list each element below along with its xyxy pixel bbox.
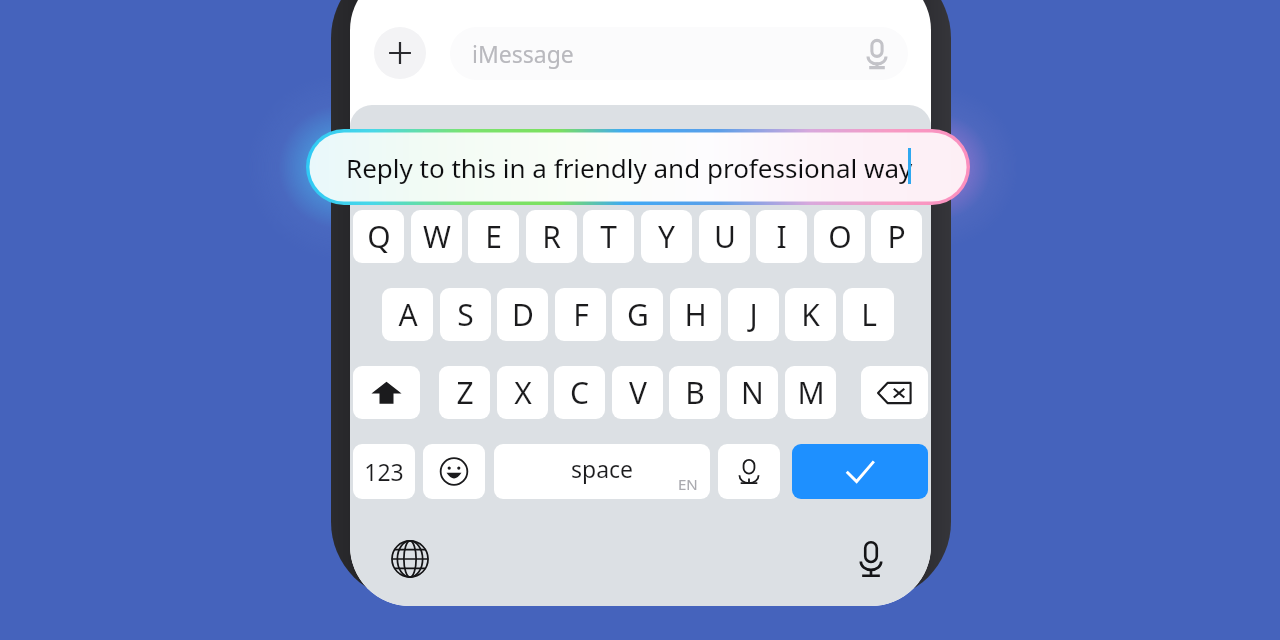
- button[interactable]: Dictate: [862, 37, 892, 71]
- button[interactable]: Z: [439, 366, 490, 419]
- staticText: A: [398, 294, 418, 335]
- staticText: O: [828, 216, 852, 257]
- staticText: E: [485, 216, 502, 257]
- staticText: J: [749, 294, 758, 335]
- button[interactable]: iMessage: [450, 27, 908, 80]
- staticText: Y: [658, 216, 675, 257]
- button[interactable]: Reply to this in a friendly and professi…: [306, 129, 970, 205]
- staticText: I: [776, 216, 787, 257]
- staticText: W: [423, 216, 451, 257]
- staticText: Reply to this in a friendly and professi…: [346, 150, 913, 185]
- staticText: P: [887, 216, 906, 257]
- button[interactable]: V: [612, 366, 663, 419]
- button[interactable]: Dictation: [848, 534, 894, 584]
- button[interactable]: Shift: [353, 366, 420, 419]
- button[interactable]: H: [670, 288, 721, 341]
- staticText: EN: [678, 474, 698, 494]
- button[interactable]: Voice input: [718, 444, 780, 499]
- button[interactable]: K: [785, 288, 836, 341]
- staticText: M: [797, 372, 825, 413]
- button[interactable]: Y: [641, 210, 692, 263]
- button[interactable]: Change keyboard language: [387, 536, 433, 582]
- staticText: B: [685, 372, 705, 413]
- button[interactable]: A: [382, 288, 433, 341]
- staticText: space: [571, 453, 634, 484]
- staticText: R: [542, 216, 561, 257]
- staticText: G: [627, 294, 649, 335]
- button[interactable]: T: [583, 210, 634, 263]
- button[interactable]: X: [497, 366, 548, 419]
- button[interactable]: R: [526, 210, 577, 263]
- button[interactable]: Q: [353, 210, 404, 263]
- button[interactable]: L: [843, 288, 894, 341]
- button[interactable]: B: [669, 366, 720, 419]
- button[interactable]: U: [699, 210, 750, 263]
- button[interactable]: F: [555, 288, 606, 341]
- staticText: Q: [367, 216, 391, 257]
- staticText: Z: [456, 372, 474, 413]
- button[interactable]: Send: [792, 444, 928, 499]
- staticText: X: [514, 372, 532, 413]
- staticText: C: [570, 372, 589, 413]
- staticText: D: [512, 294, 534, 335]
- staticText: iMessage: [472, 38, 574, 69]
- button[interactable]: D: [497, 288, 548, 341]
- button[interactable]: O: [814, 210, 865, 263]
- button[interactable]: M: [785, 366, 836, 419]
- button[interactable]: N: [727, 366, 778, 419]
- staticText: T: [600, 216, 617, 257]
- staticText: V: [629, 372, 647, 413]
- staticText: N: [741, 372, 764, 413]
- button[interactable]: C: [554, 366, 605, 419]
- button[interactable]: Backspace: [861, 366, 928, 419]
- staticText: 123: [364, 456, 404, 487]
- button[interactable]: I: [756, 210, 807, 263]
- staticText: U: [714, 216, 736, 257]
- button[interactable]: E: [468, 210, 519, 263]
- staticText: F: [573, 294, 589, 335]
- button[interactable]: P: [871, 210, 922, 263]
- button[interactable]: Emoji: [423, 444, 485, 499]
- button[interactable]: Add attachment: [374, 27, 426, 79]
- button[interactable]: 123: [353, 444, 415, 499]
- button[interactable]: S: [440, 288, 491, 341]
- button[interactable]: G: [612, 288, 663, 341]
- button[interactable]: J: [728, 288, 779, 341]
- staticText: K: [801, 294, 820, 335]
- staticText: S: [457, 294, 474, 335]
- button[interactable]: space: [494, 444, 710, 499]
- staticText: L: [861, 294, 877, 335]
- staticText: H: [684, 294, 707, 335]
- button[interactable]: W: [411, 210, 462, 263]
